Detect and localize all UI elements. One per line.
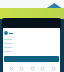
button[interactable]: Nav — [8, 65, 14, 71]
button[interactable]: Nav — [18, 65, 24, 71]
button[interactable] — [4, 56, 59, 62]
button[interactable]: Nav — [50, 65, 56, 71]
button[interactable]: Nav — [29, 65, 35, 71]
button[interactable]: Nav — [39, 65, 45, 71]
